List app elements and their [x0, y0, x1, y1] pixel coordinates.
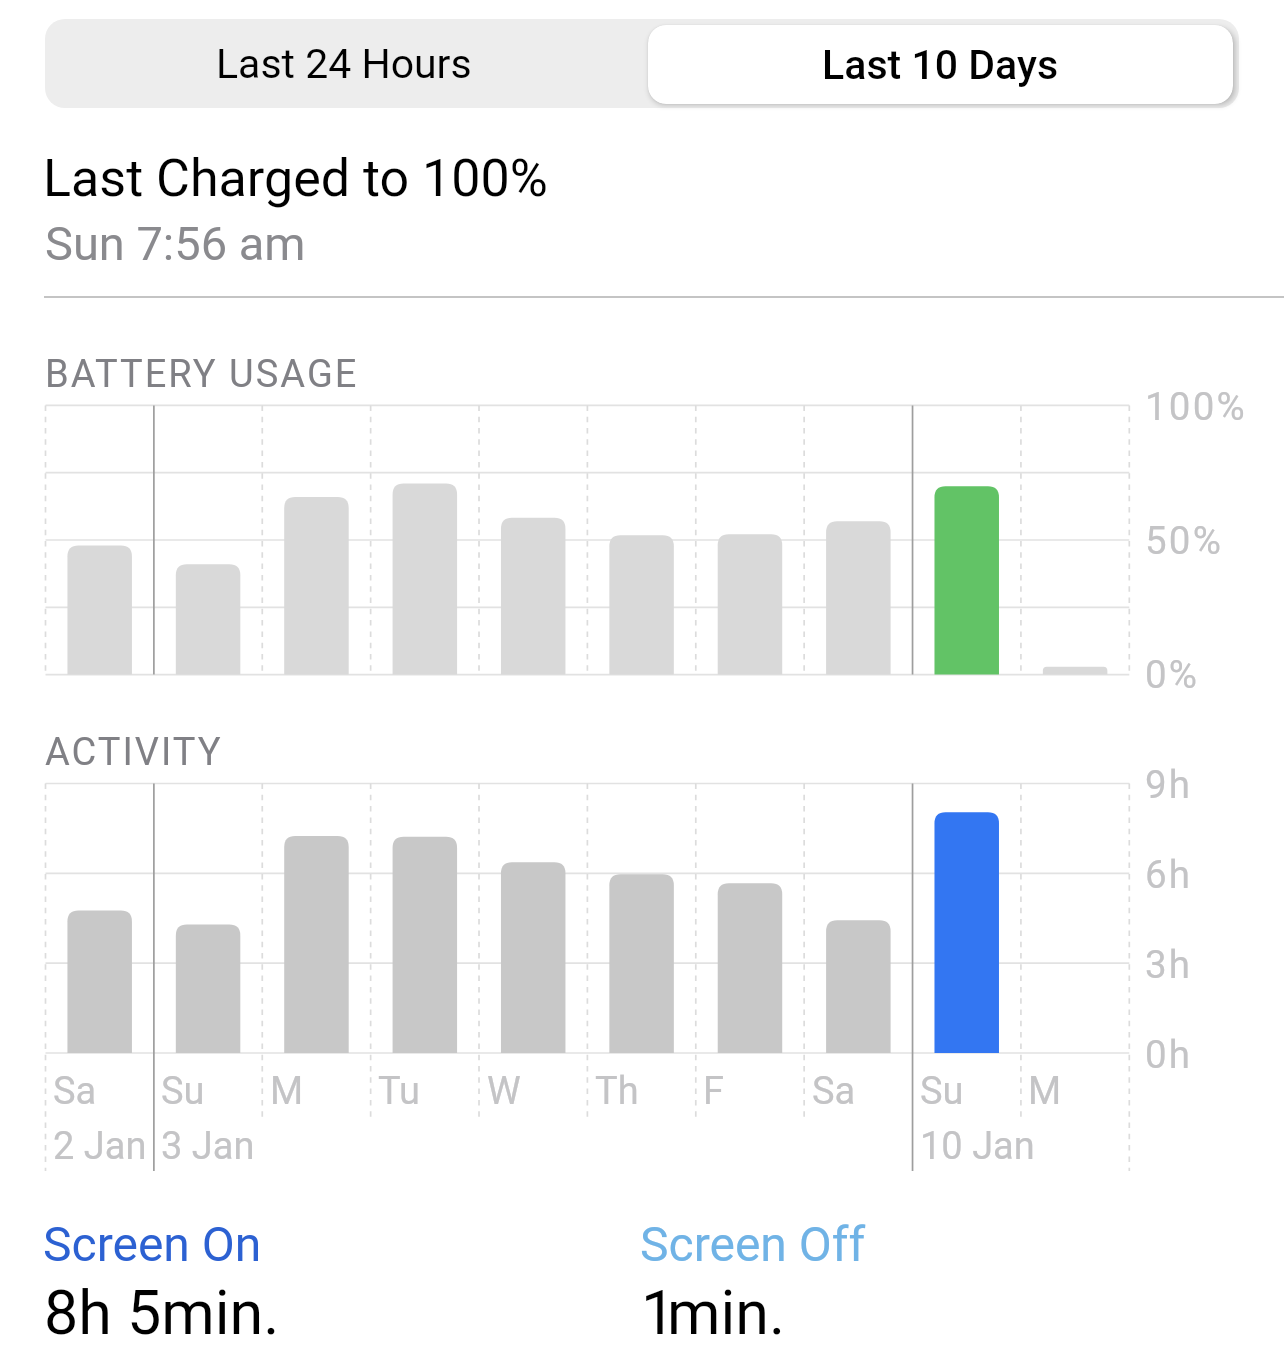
button[interactable]: Activity Sunday 10 Jan [913, 784, 1021, 1054]
staticText: 9h [1145, 762, 1193, 807]
staticText: Tu [378, 1069, 420, 1114]
staticText: 50% [1145, 518, 1224, 563]
staticText: Last 24 Hours [216, 40, 472, 88]
staticText: M [270, 1069, 304, 1114]
button[interactable]: Last 10 Days [648, 25, 1233, 104]
staticText: Sun 7:56 am [45, 216, 306, 271]
staticText: Last 10 Days [822, 41, 1059, 89]
button[interactable]: Screen On [43, 1210, 603, 1355]
button[interactable]: Battery usage Wednesday 6 Jan [479, 405, 587, 674]
button[interactable]: Battery usage Saturday 9 Jan [804, 405, 912, 674]
button[interactable]: Activity Saturday 9 Jan [804, 784, 912, 1054]
button[interactable]: Activity Tuesday 5 Jan [371, 784, 479, 1054]
button[interactable]: Battery usage Friday 8 Jan [696, 405, 804, 674]
staticText: ACTIVITY [45, 730, 223, 775]
button[interactable]: Activity Friday 8 Jan [696, 784, 804, 1054]
staticText: Su [920, 1069, 964, 1114]
button[interactable]: Battery usage Sunday 10 Jan [913, 405, 1021, 674]
staticText: 3h [1145, 942, 1193, 987]
button[interactable]: Activity Saturday 2 Jan [46, 784, 154, 1054]
button[interactable]: Battery usage Monday 11 Jan [1021, 405, 1129, 674]
staticText: 100% [1145, 384, 1247, 429]
staticText: 8h 5min. [44, 1277, 280, 1348]
staticText: min. [667, 1277, 786, 1348]
staticText: 6h [1145, 852, 1193, 897]
staticText: F [703, 1069, 725, 1114]
staticText: Last Charged to 100% [43, 148, 548, 209]
staticText: M [1028, 1069, 1062, 1114]
staticText: Screen On [43, 1216, 262, 1272]
staticText: Su [161, 1069, 205, 1114]
button[interactable]: Battery usage Monday 4 Jan [262, 405, 370, 674]
button[interactable]: Activity Monday 11 Jan [1021, 784, 1129, 1054]
staticText: Sa [812, 1069, 856, 1114]
button[interactable]: Activity Monday 4 Jan [262, 784, 370, 1054]
button[interactable]: Activity Sunday 3 Jan [154, 784, 262, 1054]
button[interactable]: Activity Thursday 7 Jan [587, 784, 695, 1054]
button[interactable]: Battery usage Thursday 7 Jan [587, 405, 695, 674]
staticText: Th [595, 1069, 639, 1114]
staticText: 3 Jan [161, 1124, 255, 1169]
staticText: 2 Jan [53, 1124, 147, 1169]
staticText: Screen Off [640, 1216, 866, 1272]
button[interactable]: Last 24 Hours [45, 19, 642, 108]
staticText: 1 [641, 1277, 676, 1348]
button[interactable]: Battery usage Tuesday 5 Jan [371, 405, 479, 674]
staticText: 0h [1145, 1032, 1193, 1077]
button[interactable]: Activity Wednesday 6 Jan [479, 784, 587, 1054]
button[interactable]: Battery usage Sunday 3 Jan [154, 405, 262, 674]
button[interactable]: Battery usage Saturday 2 Jan [46, 405, 154, 674]
staticText: 0% [1145, 652, 1200, 697]
staticText: BATTERY USAGE [45, 352, 359, 397]
staticText: W [487, 1069, 521, 1114]
button[interactable]: Screen Off [640, 1210, 1200, 1355]
staticText: Sa [53, 1069, 97, 1114]
staticText: 10 Jan [920, 1124, 1035, 1169]
